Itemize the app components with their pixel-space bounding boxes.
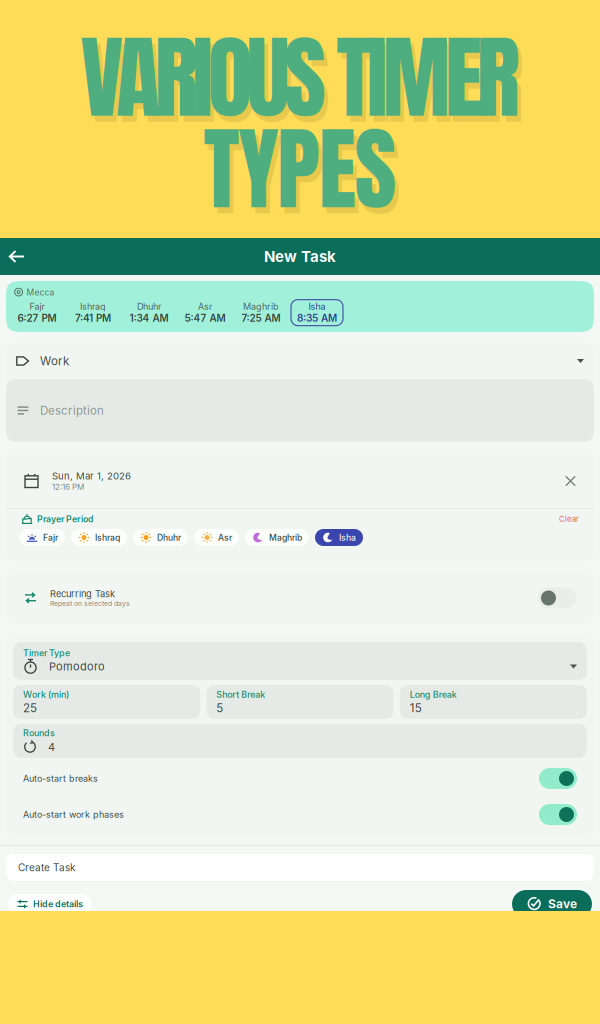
- button[interactable]: Sun, Mar 1, 2026: [6, 454, 594, 508]
- staticText: 6:27 PM: [17, 312, 56, 324]
- staticText: Isha: [308, 301, 325, 312]
- button[interactable]: Asr: [179, 300, 231, 326]
- staticText: Save: [548, 897, 577, 911]
- button[interactable]: On: [539, 768, 577, 789]
- staticText: New Task: [264, 247, 336, 265]
- staticText: Asr: [198, 301, 212, 312]
- button[interactable]: Isha: [315, 529, 363, 546]
- staticText: Mecca: [26, 287, 54, 298]
- staticText: VARIOUS TIMER: [84, 15, 524, 151]
- staticText: Ishraq: [80, 301, 106, 312]
- staticText: Prayer Period: [33, 514, 93, 524]
- staticText: 8:35 AM: [297, 312, 337, 324]
- button[interactable]: Isha: [291, 300, 343, 326]
- staticText: Maghrib: [269, 532, 302, 543]
- button[interactable]: Timer Type: [13, 642, 587, 680]
- button[interactable]: Ishraq: [67, 300, 119, 326]
- staticText: Auto-start breaks: [23, 773, 98, 784]
- button[interactable]: Create Task: [6, 854, 594, 881]
- staticText: Recurring Task: [50, 588, 115, 600]
- button[interactable]: Asr: [194, 529, 239, 546]
- staticText: Long Break: [410, 689, 457, 700]
- staticText: Work (min): [23, 689, 69, 700]
- staticText: Fajr: [29, 301, 44, 312]
- staticText: Description: [40, 403, 104, 417]
- staticText: Rounds: [23, 728, 55, 738]
- staticText: 5: [216, 701, 223, 715]
- staticText: 4: [48, 740, 55, 754]
- button[interactable]: Fajr: [11, 300, 63, 326]
- staticText: Timer Type: [23, 648, 70, 658]
- button[interactable]: Maghrib: [235, 300, 287, 326]
- button[interactable]: Off: [538, 587, 576, 608]
- button[interactable]: Fajr: [19, 529, 65, 546]
- button[interactable]: Dhuhr: [133, 529, 188, 546]
- staticText: Create Task: [18, 861, 75, 874]
- staticText: TYPES: [207, 106, 401, 243]
- button[interactable]: Maghrib: [245, 529, 309, 546]
- button[interactable]: Work: [6, 343, 594, 379]
- button[interactable]: Back: [0, 238, 34, 275]
- button[interactable]: Clear: [559, 514, 579, 524]
- staticText: Work: [40, 354, 69, 368]
- staticText: Short Break: [216, 689, 265, 700]
- button[interactable]: Ishraq: [71, 529, 127, 546]
- staticText: Auto-start work phases: [23, 809, 124, 820]
- staticText: VARIOUS TIMER: [80, 9, 520, 145]
- staticText: Hide details: [33, 899, 83, 909]
- staticText: Clear: [559, 514, 579, 524]
- staticText: Asr: [218, 532, 232, 543]
- staticText: Dhuhr: [137, 301, 161, 312]
- staticText: 5:47 AM: [184, 312, 225, 324]
- staticText: 12:16 PM: [52, 482, 84, 492]
- staticText: Fajr: [43, 532, 58, 543]
- staticText: 25: [23, 701, 37, 715]
- staticText: Pomodoro: [49, 660, 105, 673]
- button[interactable]: Description: [6, 379, 594, 442]
- staticText: Sun, Mar 1, 2026: [52, 470, 131, 482]
- staticText: Repeat on selected days: [50, 599, 130, 608]
- staticText: Ishraq: [95, 532, 120, 543]
- staticText: Maghrib: [243, 301, 279, 312]
- staticText: 15: [410, 701, 422, 715]
- button[interactable]: Dhuhr: [123, 300, 175, 326]
- button[interactable]: Save: [512, 890, 592, 918]
- staticText: 7:41 PM: [75, 312, 111, 324]
- staticText: Isha: [339, 532, 356, 543]
- staticText: 7:25 AM: [241, 312, 280, 324]
- button[interactable]: On: [539, 804, 577, 825]
- staticText: Dhuhr: [157, 532, 181, 543]
- staticText: 1:34 AM: [129, 312, 168, 324]
- staticText: TYPES: [203, 100, 397, 237]
- button[interactable]: Hide details: [8, 894, 92, 914]
